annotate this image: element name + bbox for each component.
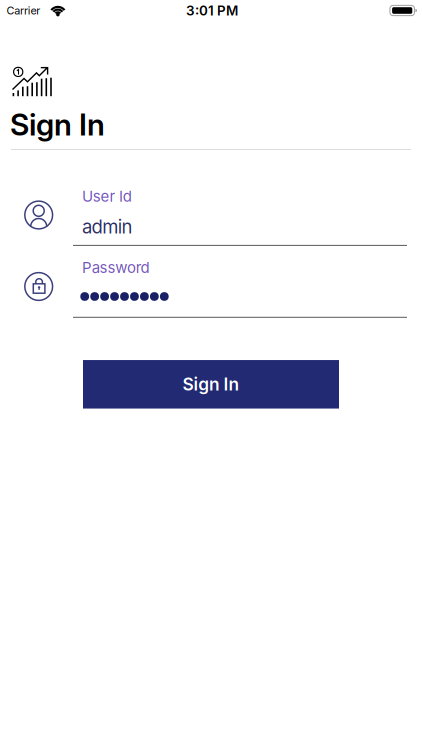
staticText: Password bbox=[82, 258, 150, 276]
button[interactable]: User Id bbox=[23, 186, 407, 246]
button[interactable]: Sign In bbox=[83, 360, 339, 409]
staticText: Sign In bbox=[10, 106, 105, 143]
staticText: admin bbox=[82, 216, 132, 238]
staticText: User Id bbox=[82, 187, 132, 205]
button[interactable]: Password bbox=[23, 258, 407, 318]
staticText: Carrier bbox=[6, 4, 40, 17]
staticText: 3:01 PM bbox=[186, 3, 238, 19]
staticText: Sign In bbox=[183, 374, 239, 395]
